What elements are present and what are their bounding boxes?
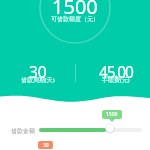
staticText: 手续费(元) (102, 76, 130, 84)
staticText: 借款周期(天) (21, 76, 55, 84)
staticText: 45.00 (99, 61, 133, 82)
staticText: 1500 (106, 111, 118, 118)
staticText: 30 (29, 61, 47, 82)
button[interactable]: 30 (38, 141, 53, 149)
staticText: 借款金额 (11, 127, 35, 135)
staticText: 可借款额度（元） (51, 15, 99, 23)
staticText: 1500 (52, 0, 98, 20)
staticText: 30 (43, 142, 49, 149)
button[interactable] (37, 121, 143, 134)
